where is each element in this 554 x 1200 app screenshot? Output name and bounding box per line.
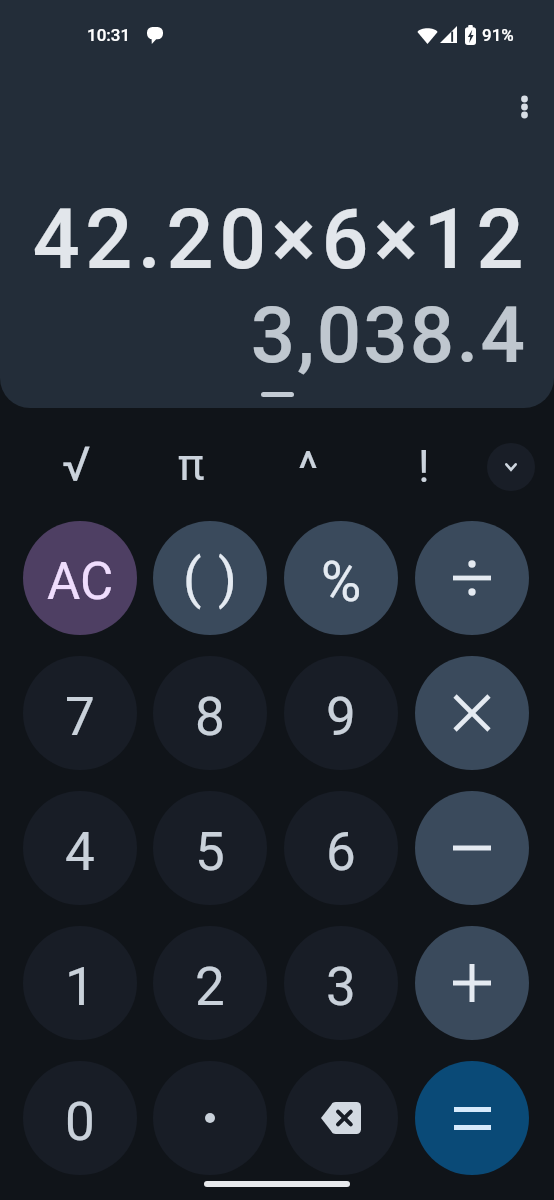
staticText: ^ [298, 440, 319, 496]
button[interactable]: Multiply [415, 656, 529, 770]
button[interactable]: ^ [253, 435, 363, 501]
button[interactable]: Equals [415, 1061, 529, 1175]
staticText: 5 [195, 821, 225, 883]
button[interactable]: More options [500, 83, 548, 131]
button[interactable]: 9 [284, 656, 398, 770]
staticText: ( [183, 547, 202, 610]
button[interactable]: √ [21, 431, 131, 497]
button[interactable]: Parentheses [153, 521, 267, 635]
staticText: 9 [326, 686, 356, 748]
button[interactable]: 8 [153, 656, 267, 770]
button[interactable]: Plus [415, 926, 529, 1040]
staticText: 7 [65, 686, 95, 748]
staticText: 3,038.4 [250, 289, 527, 381]
staticText: 10:31 [87, 25, 131, 45]
staticText: √ [62, 436, 91, 492]
button[interactable]: 6 [284, 791, 398, 905]
button[interactable]: Expand keypad [487, 443, 535, 491]
staticText: π [178, 439, 205, 491]
staticText: AC [47, 552, 114, 612]
button[interactable]: ! [369, 433, 479, 499]
other: Equals [454, 1107, 491, 1130]
button[interactable]: 2 [153, 926, 267, 1040]
button[interactable]: 7 [23, 656, 137, 770]
button[interactable]: Backspace [284, 1061, 398, 1175]
other: Multiply [455, 696, 489, 730]
staticText: ! [418, 440, 430, 493]
other: Divide [453, 559, 491, 597]
other: Parentheses [183, 547, 237, 610]
button[interactable]: Minus [415, 791, 529, 905]
staticText: 2 [195, 956, 225, 1018]
staticText: 4 [65, 821, 95, 883]
button[interactable]: AC [23, 521, 137, 635]
staticText: 8 [195, 686, 225, 748]
button[interactable]: 5 [153, 791, 267, 905]
button[interactable]: Decimal point [153, 1061, 267, 1175]
staticText: % [321, 550, 362, 614]
button[interactable]: π [136, 432, 246, 498]
other: Minus [453, 829, 491, 867]
button[interactable]: 0 [23, 1061, 137, 1175]
staticText: 6 [326, 821, 356, 883]
button[interactable]: 3 [284, 926, 398, 1040]
button[interactable]: % [284, 521, 398, 635]
staticText: 42.20×6×12 [32, 191, 529, 288]
staticText: 3 [326, 956, 356, 1018]
staticText: 0 [65, 1091, 95, 1153]
staticText: 91% [482, 25, 514, 45]
other: Plus [453, 964, 491, 1002]
staticText: ) [218, 547, 237, 610]
button[interactable]: 4 [23, 791, 137, 905]
other: Decimal point [205, 1113, 215, 1123]
other: Backspace [321, 1102, 361, 1134]
button[interactable]: 1 [23, 926, 137, 1040]
button[interactable]: Divide [415, 521, 529, 635]
staticText: 1 [65, 956, 95, 1018]
